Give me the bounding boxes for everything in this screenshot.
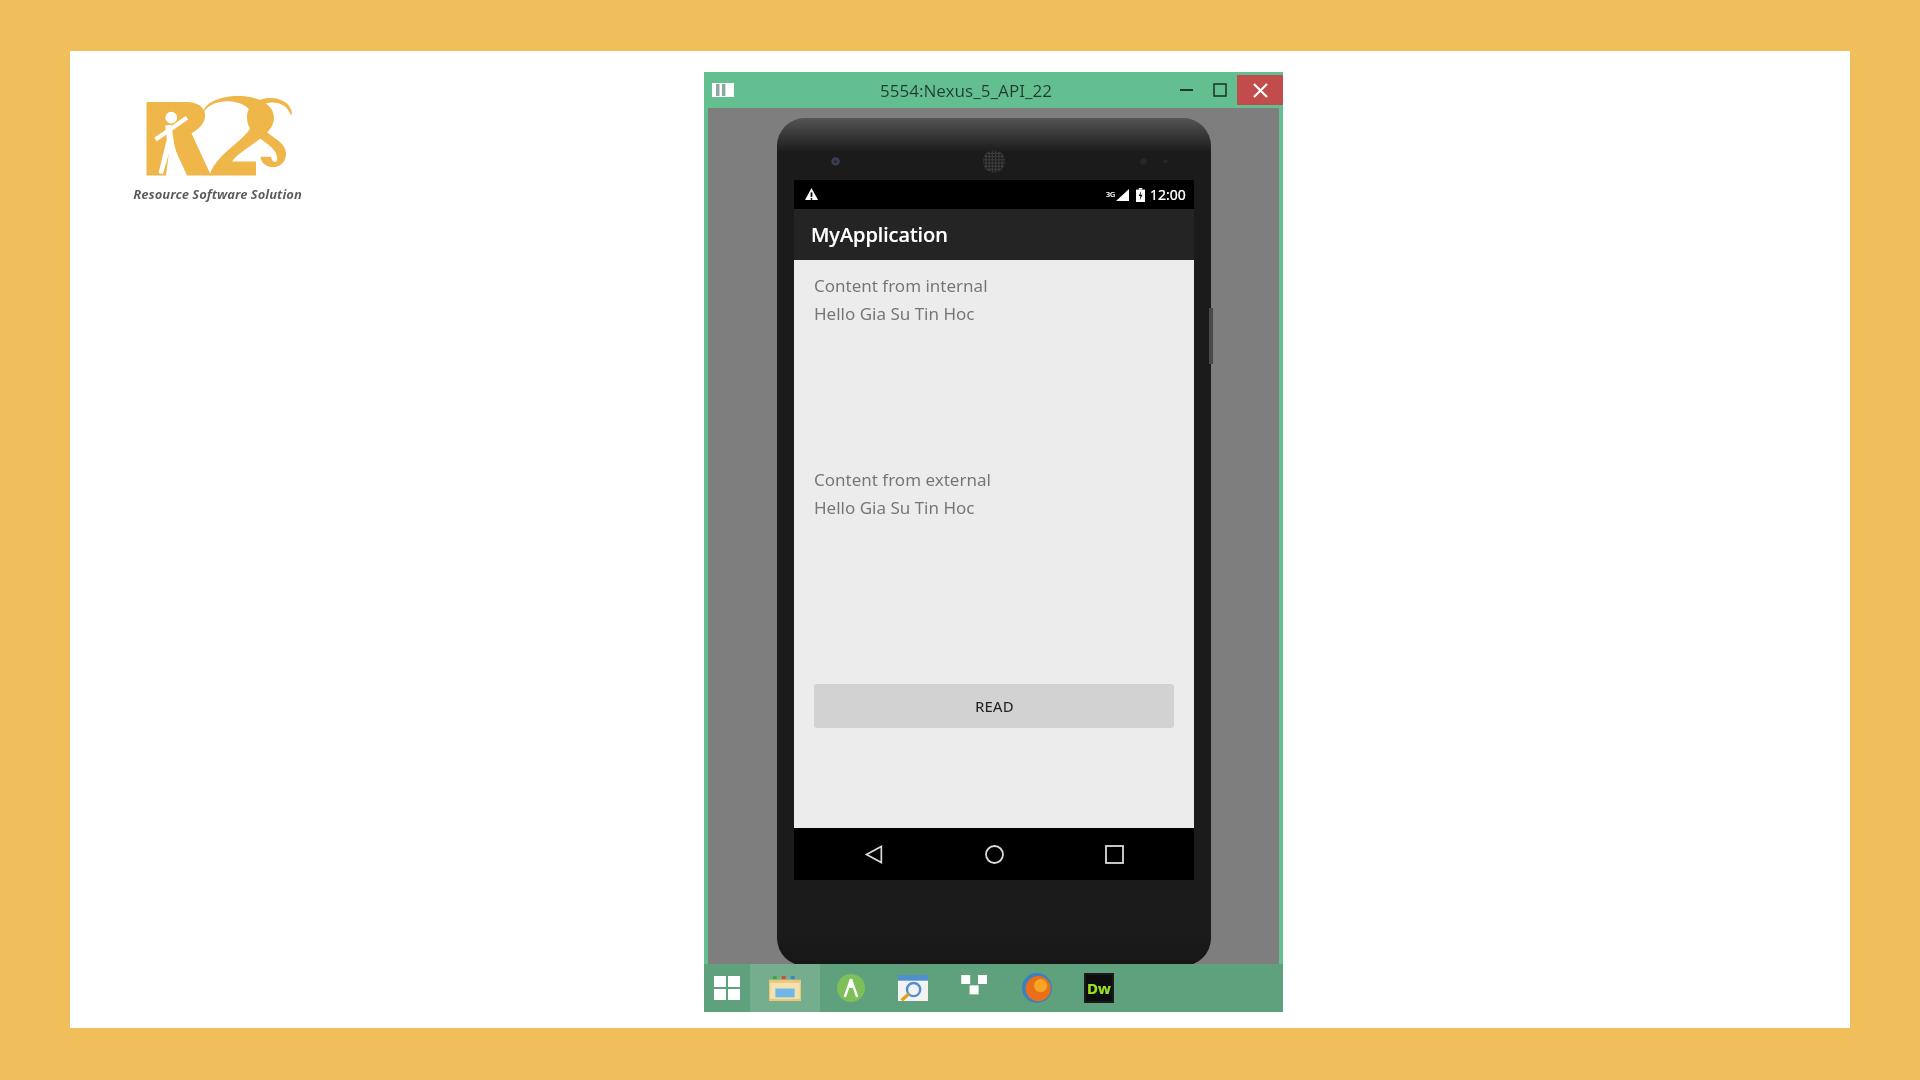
staticText: Hello Gia Su Tin Hoc [814,302,975,325]
button[interactable]: File Explorer [750,964,820,1012]
staticText: Dw [1087,978,1111,998]
button[interactable]: READ [814,684,1174,728]
button[interactable]: Search [882,964,944,1012]
button[interactable]: Back [834,828,914,880]
staticText: Hello Gia Su Tin Hoc [814,496,975,519]
staticText: Content from internal [814,274,988,297]
staticText: 5554:Nexus_5_API_22 [880,79,1052,102]
button[interactable]: Recent apps [1074,828,1154,880]
button[interactable]: Start [704,964,750,1012]
button[interactable]: Unikey [944,964,1006,1012]
staticText: MyApplication [811,221,948,248]
staticText: 12:00 [1150,185,1186,204]
button[interactable]: Firefox [1006,964,1068,1012]
button[interactable]: Home [954,828,1034,880]
button[interactable]: Close [1237,75,1283,105]
button[interactable]: Minimize [1169,75,1203,105]
staticText: 3G [1106,190,1116,200]
button[interactable]: Maximize [1203,75,1237,105]
staticText: Content from external [814,468,991,491]
button[interactable]: Dreamweaver [1068,964,1130,1012]
button[interactable]: Android Studio [820,964,882,1012]
staticText: Resource Software Solution [133,185,302,203]
staticText: READ [975,696,1014,716]
